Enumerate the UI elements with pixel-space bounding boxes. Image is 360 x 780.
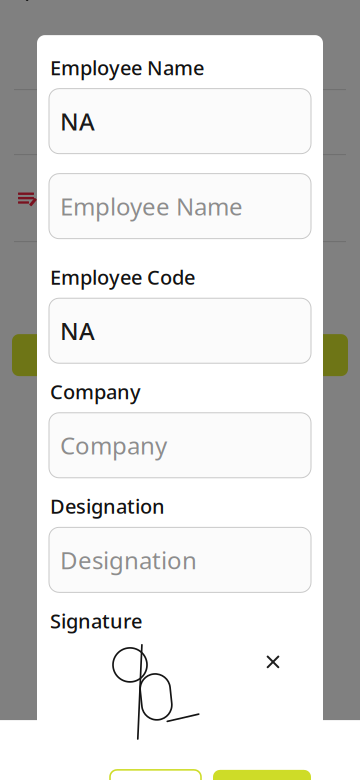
staticText: Signature (50, 607, 142, 634)
button[interactable]: Back (0, 0, 46, 17)
staticText: NA (60, 315, 95, 347)
button[interactable]: NA (49, 89, 311, 154)
staticText: NA (60, 105, 95, 137)
button[interactable]: Employee Name (49, 174, 311, 239)
button[interactable]: OK (213, 770, 311, 780)
button[interactable]: NA (49, 298, 311, 363)
button[interactable]: Company (49, 413, 311, 478)
staticText: Designation (50, 493, 165, 519)
staticText: Employee Name (60, 190, 243, 222)
staticText: Employee Code (50, 264, 195, 290)
button[interactable]: Designation (49, 527, 311, 592)
staticText: Company (60, 429, 167, 461)
button[interactable]: Cancel (110, 770, 201, 780)
staticText: Designation (60, 544, 197, 576)
button[interactable]: Clear signature (254, 643, 292, 681)
staticText: Employee Name (50, 54, 204, 81)
staticText: Company (50, 378, 141, 405)
